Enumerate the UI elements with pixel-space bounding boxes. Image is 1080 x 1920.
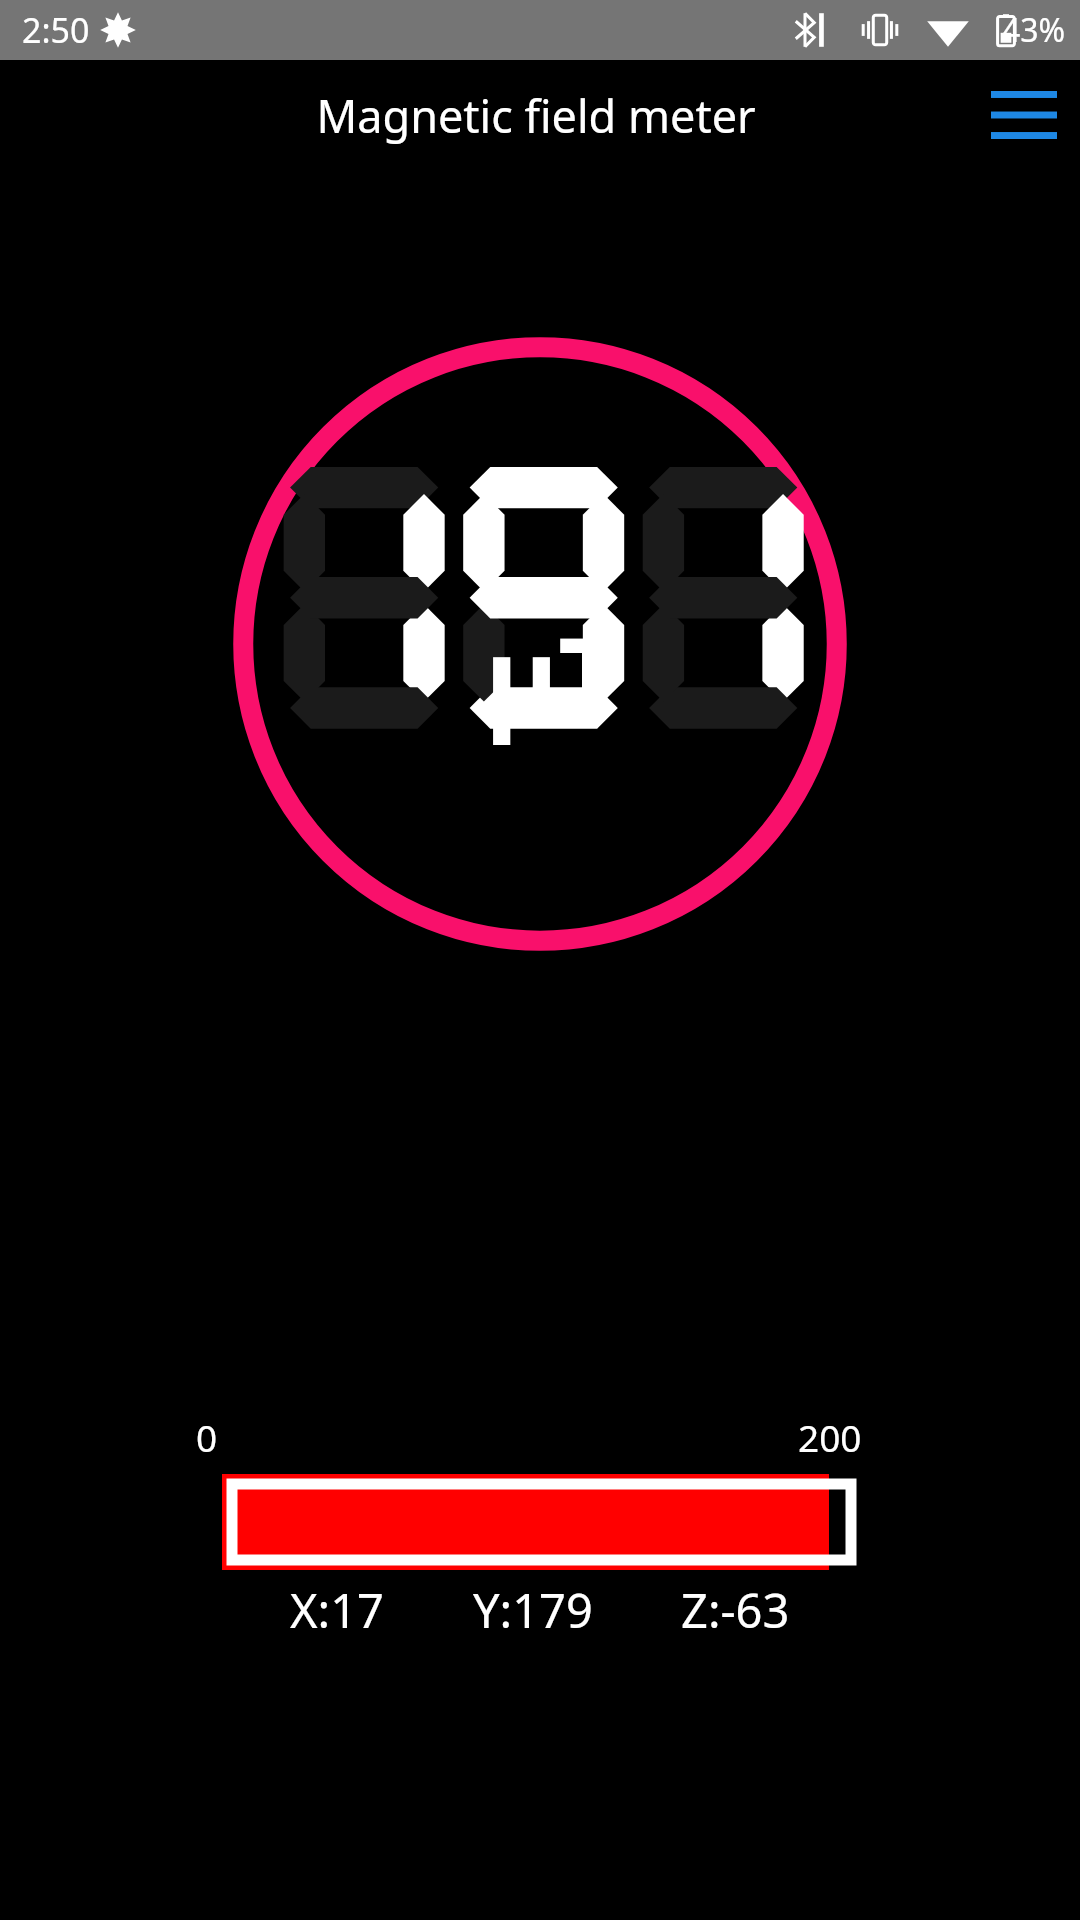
staticText: Z:-63 xyxy=(681,1578,790,1642)
staticText: Y:179 xyxy=(473,1578,593,1642)
staticText: 43% xyxy=(1002,8,1066,52)
staticText: X:17 xyxy=(290,1578,384,1642)
button[interactable]: Menu xyxy=(988,79,1060,151)
staticText: 2:50 xyxy=(22,7,90,53)
staticText: 0 xyxy=(196,1412,218,1462)
staticText: Magnetic field meter xyxy=(316,85,756,146)
staticText: 200 xyxy=(798,1412,862,1462)
staticText: µT xyxy=(485,598,623,751)
